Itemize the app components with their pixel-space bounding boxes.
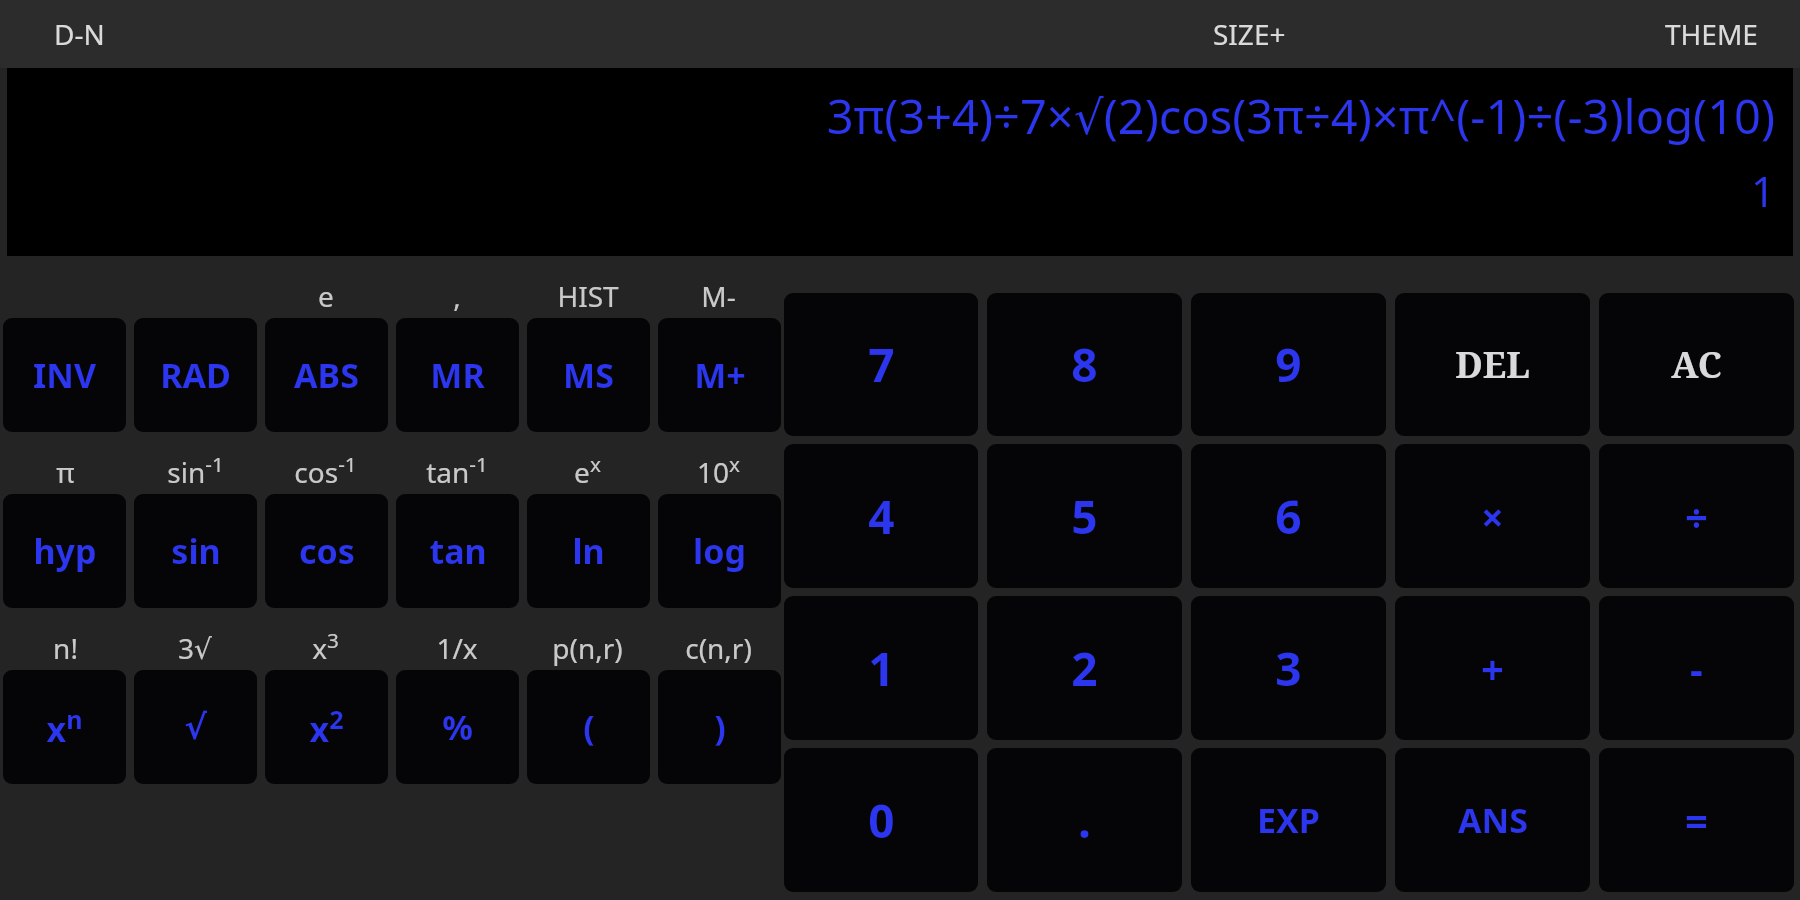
staticText: cos-1	[294, 450, 357, 491]
button[interactable]: D-N	[40, 5, 119, 63]
button[interactable]: cos	[265, 494, 388, 608]
staticText: -	[1690, 641, 1703, 695]
button[interactable]: Open parenthesis	[527, 670, 650, 784]
button[interactable]: 2	[987, 596, 1182, 740]
staticText: 3	[1275, 637, 1302, 700]
button[interactable]: ln	[527, 494, 650, 608]
button[interactable]: 5	[987, 444, 1182, 588]
staticText: .	[1078, 789, 1091, 852]
staticText: sin-1	[167, 450, 224, 491]
staticText: x2	[309, 702, 344, 752]
staticText: ABS	[294, 352, 359, 398]
staticText: MS	[563, 352, 614, 398]
staticText: %	[442, 704, 473, 750]
button[interactable]: MS	[527, 318, 650, 432]
staticText: ex	[574, 450, 601, 491]
staticText: DEL	[1455, 340, 1530, 389]
staticText: M-	[701, 277, 736, 315]
button[interactable]: ANS	[1395, 748, 1590, 892]
staticText: INV	[33, 352, 96, 398]
staticText: D-N	[54, 15, 105, 53]
button[interactable]: 3π(3+4)÷7×√(2)cos(3π÷4)×π^(-1)÷(-3)log(1…	[7, 68, 1793, 256]
staticText: tan-1	[426, 450, 488, 491]
staticText: AC	[1671, 340, 1722, 389]
staticText: xn	[46, 702, 83, 752]
staticText: ln	[572, 528, 605, 574]
button[interactable]: 7	[784, 293, 978, 436]
staticText: hyp	[33, 528, 97, 574]
staticText: 1/x	[436, 629, 478, 667]
staticText: 7	[868, 333, 895, 396]
staticText: SIZE+	[1213, 15, 1286, 53]
button[interactable]: THEME	[1651, 5, 1772, 63]
button[interactable]: Minus	[1599, 596, 1794, 740]
button[interactable]: 1	[784, 596, 978, 740]
button[interactable]: 3	[1191, 596, 1386, 740]
button[interactable]: RAD	[134, 318, 257, 432]
staticText: MR	[430, 352, 485, 398]
staticText: ÷	[1685, 489, 1708, 543]
button[interactable]: 8	[987, 293, 1182, 436]
staticText: +	[1481, 641, 1504, 695]
button[interactable]: 6	[1191, 444, 1386, 588]
staticText: HIST	[557, 277, 619, 315]
staticText: ×	[1481, 489, 1504, 543]
staticText: ,	[453, 277, 461, 315]
staticText: 1	[868, 637, 895, 700]
button[interactable]: sin	[134, 494, 257, 608]
staticText: 0	[868, 789, 895, 852]
staticText: 10x	[697, 450, 740, 491]
staticText: ANS	[1458, 797, 1528, 843]
button[interactable]: EXP	[1191, 748, 1386, 892]
button[interactable]: xn	[3, 670, 126, 784]
button[interactable]: ABS	[265, 318, 388, 432]
staticText: 3π(3+4)÷7×√(2)cos(3π÷4)×π^(-1)÷(-3)log(1…	[826, 84, 1775, 148]
button[interactable]: tan	[396, 494, 519, 608]
button[interactable]: DEL	[1395, 293, 1590, 436]
staticText: THEME	[1665, 15, 1758, 53]
staticText: cos	[299, 528, 355, 574]
button[interactable]: MR	[396, 318, 519, 432]
button[interactable]: Equals	[1599, 748, 1794, 892]
button[interactable]: INV	[3, 318, 126, 432]
staticText: 9	[1275, 333, 1302, 396]
staticText: M+	[694, 352, 746, 398]
staticText: 5	[1071, 485, 1098, 548]
staticText: tan	[429, 528, 487, 574]
staticText: √	[184, 707, 207, 747]
button[interactable]: 4	[784, 444, 978, 588]
button[interactable]: Close parenthesis	[658, 670, 781, 784]
staticText: x3	[312, 626, 339, 667]
button[interactable]: Plus	[1395, 596, 1590, 740]
button[interactable]: SIZE+	[1199, 5, 1300, 63]
button[interactable]: 0	[784, 748, 978, 892]
staticText: n!	[53, 629, 78, 667]
staticText: 3√	[178, 629, 212, 667]
button[interactable]: Divide	[1599, 444, 1794, 588]
staticText: sin	[171, 528, 221, 574]
staticText: log	[693, 528, 746, 574]
staticText: p(n,r)	[552, 629, 623, 667]
staticText: 4	[868, 485, 895, 548]
staticText: c(n,r)	[685, 629, 752, 667]
staticText: EXP	[1257, 797, 1320, 843]
button[interactable]: hyp	[3, 494, 126, 608]
staticText: 1	[1750, 162, 1775, 219]
staticText: π	[56, 453, 75, 491]
staticText: (	[583, 704, 595, 750]
staticText: 6	[1275, 485, 1302, 548]
staticText: e	[318, 277, 334, 315]
button[interactable]: Percent	[396, 670, 519, 784]
staticText: RAD	[160, 352, 231, 398]
button[interactable]: Square root	[134, 670, 257, 784]
button[interactable]: M+	[658, 318, 781, 432]
staticText: 2	[1071, 637, 1098, 700]
button[interactable]: Decimal point	[987, 748, 1182, 892]
button[interactable]: 9	[1191, 293, 1386, 436]
button[interactable]: Multiply	[1395, 444, 1590, 588]
staticText: 8	[1071, 333, 1098, 396]
button[interactable]: x2	[265, 670, 388, 784]
button[interactable]: AC	[1599, 293, 1794, 436]
button[interactable]: log	[658, 494, 781, 608]
staticText: )	[714, 704, 726, 750]
